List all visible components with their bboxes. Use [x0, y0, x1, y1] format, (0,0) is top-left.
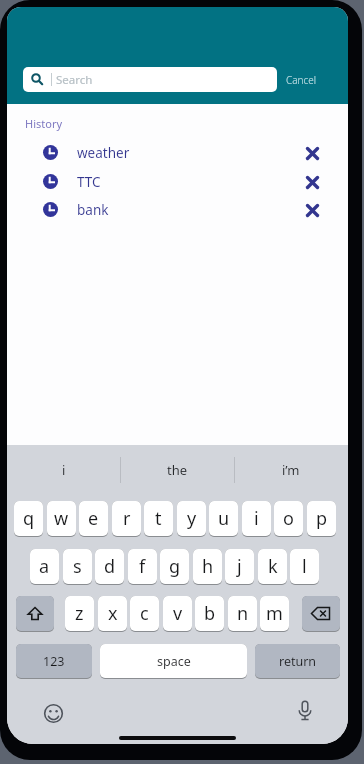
staticText: q	[23, 506, 35, 531]
staticText: u	[218, 506, 230, 531]
button[interactable]	[299, 169, 325, 195]
staticText: 123	[43, 653, 65, 670]
staticText: Search	[56, 72, 93, 88]
staticText: p	[316, 506, 328, 531]
button[interactable]	[291, 697, 319, 725]
button[interactable]: TTC	[7, 167, 348, 196]
staticText: c	[140, 601, 149, 626]
staticText: k	[268, 554, 278, 579]
staticText: z	[75, 601, 84, 626]
button[interactable]: b	[195, 596, 224, 631]
staticText: History	[25, 116, 63, 131]
staticText: h	[202, 554, 214, 579]
staticText: t	[155, 506, 162, 531]
button[interactable]	[299, 197, 325, 223]
staticText: w	[54, 506, 69, 531]
button[interactable]: o	[274, 501, 303, 536]
staticText: r	[123, 506, 131, 531]
staticText: Cancel	[286, 73, 317, 87]
button[interactable]: g	[160, 549, 189, 584]
button[interactable]: i	[7, 445, 120, 494]
button[interactable]: weather	[7, 138, 348, 167]
staticText: TTC	[77, 173, 101, 191]
staticText: b	[204, 601, 216, 626]
staticText: x	[108, 601, 118, 626]
button[interactable]: m	[260, 596, 289, 631]
staticText: the	[167, 461, 188, 479]
button[interactable]: return	[255, 644, 340, 678]
button[interactable]: h	[193, 549, 222, 584]
button[interactable]: d	[95, 549, 124, 584]
staticText: v	[173, 601, 183, 626]
button[interactable]: e	[79, 501, 108, 536]
button[interactable]: y	[177, 501, 206, 536]
button[interactable]: space	[100, 644, 247, 678]
staticText: o	[283, 506, 294, 531]
button[interactable]: j	[225, 549, 254, 584]
staticText: y	[187, 506, 197, 531]
staticText: m	[266, 601, 283, 626]
button[interactable]: c	[130, 596, 159, 631]
button[interactable]: s	[63, 549, 92, 584]
staticText: e	[88, 506, 99, 531]
button[interactable]: t	[144, 501, 173, 536]
button[interactable]: n	[228, 596, 257, 631]
button[interactable]: 123	[16, 644, 92, 678]
button[interactable]: the	[120, 445, 234, 494]
staticText: return	[279, 653, 317, 670]
button[interactable]: Search	[23, 67, 277, 92]
button[interactable]: w	[47, 501, 76, 536]
staticText: l	[302, 554, 307, 579]
staticText: f	[139, 554, 146, 579]
staticText: s	[73, 554, 82, 579]
staticText: i	[254, 506, 259, 531]
button[interactable]: Cancel	[278, 69, 324, 90]
button[interactable]: z	[65, 596, 94, 631]
staticText: weather	[77, 144, 130, 162]
staticText: a	[39, 554, 50, 579]
button[interactable]	[302, 596, 340, 631]
button[interactable]: x	[98, 596, 127, 631]
staticText: bank	[77, 201, 109, 219]
button[interactable]	[39, 699, 67, 727]
button[interactable]: q	[14, 501, 43, 536]
button[interactable]: v	[163, 596, 192, 631]
button[interactable]: i	[242, 501, 271, 536]
staticText: d	[104, 554, 116, 579]
button[interactable]: bank	[7, 195, 348, 224]
button[interactable]: i’m	[234, 445, 348, 494]
button[interactable]: f	[128, 549, 157, 584]
staticText: j	[237, 554, 242, 579]
staticText: i’m	[282, 461, 300, 479]
staticText: g	[169, 554, 181, 579]
staticText: i	[62, 461, 66, 479]
button[interactable]: l	[290, 549, 319, 584]
button[interactable]: k	[258, 549, 287, 584]
button[interactable]: a	[30, 549, 59, 584]
staticText: space	[157, 653, 191, 670]
button[interactable]: u	[209, 501, 238, 536]
staticText: n	[237, 601, 249, 626]
button[interactable]: p	[307, 501, 336, 536]
button[interactable]	[299, 140, 325, 166]
button[interactable]: r	[112, 501, 141, 536]
button[interactable]	[16, 596, 54, 631]
